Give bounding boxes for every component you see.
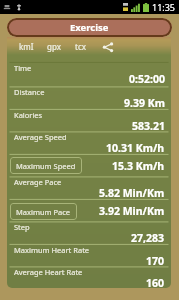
staticText: Time (14, 63, 32, 73)
button[interactable]: tcx (67, 37, 94, 62)
button[interactable]: Average Heart Rate (7, 267, 171, 288)
button[interactable]: Kalories (7, 110, 171, 132)
staticText: 15.3 Km/h (112, 159, 165, 173)
button[interactable]: Step (7, 222, 171, 244)
staticText: kmI (19, 41, 34, 52)
button[interactable]: Distance (7, 87, 171, 109)
staticText: 27,283 (131, 231, 165, 243)
button[interactable]: Maximum Heart Rate (7, 245, 171, 267)
staticText: 10.31 Km/h (106, 141, 165, 153)
button[interactable]: Maximum Pace (7, 200, 171, 222)
button[interactable]: Share (94, 37, 121, 62)
button[interactable]: Average Speed (7, 132, 171, 154)
button[interactable]: Average Pace (7, 177, 171, 199)
staticText: tcx (75, 41, 86, 52)
staticText: Average Pace (14, 177, 62, 187)
staticText: 583.21 (132, 119, 165, 131)
button[interactable]: gpx (40, 37, 67, 62)
staticText: 5.82 Min/Km (99, 186, 165, 198)
staticText: 9.39 Km (124, 96, 165, 108)
button[interactable]: Exercise (7, 18, 172, 37)
button[interactable]: Maximum Speed (7, 155, 171, 176)
staticText: Maximum Pace (16, 207, 71, 217)
button[interactable]: Time (7, 63, 171, 87)
staticText: Maximum Speed (16, 161, 76, 171)
staticText: 160 (146, 276, 165, 288)
staticText: Step (14, 222, 30, 232)
staticText: Distance (14, 87, 45, 97)
staticText: 170 (146, 254, 165, 266)
staticText: Exercise (70, 21, 109, 34)
staticText: 0:52:00 (129, 72, 165, 86)
staticText: Kalories (14, 110, 43, 120)
button[interactable]: kmI (13, 37, 40, 62)
staticText: gpx (47, 41, 61, 52)
staticText: Average Speed (14, 132, 67, 142)
staticText: 11:35 (152, 1, 176, 13)
staticText: Maximum Heart Rate (14, 245, 90, 255)
staticText: 3.92 Min/Km (99, 204, 165, 218)
staticText: Average Heart Rate (14, 267, 83, 277)
